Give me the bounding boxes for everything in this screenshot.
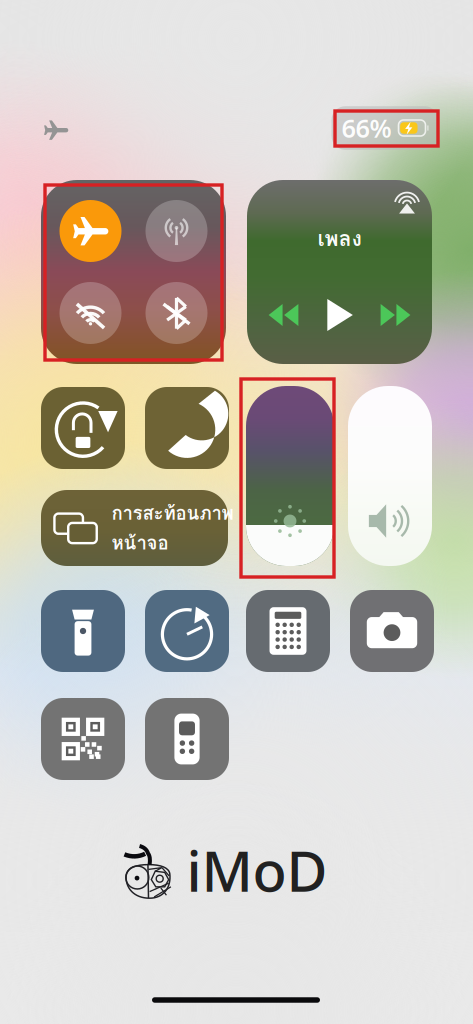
button[interactable]: Previous (268, 304, 299, 326)
button[interactable]: Wi-Fi (59, 282, 121, 344)
button[interactable]: Calculator (246, 590, 330, 672)
staticText: เพลง (317, 222, 361, 255)
button[interactable]: Cellular Data (145, 200, 207, 262)
staticText: 66% (341, 111, 391, 145)
button[interactable]: Screen Mirroring (41, 490, 228, 566)
button[interactable]: AirPlay (396, 190, 418, 214)
staticText: iMoD (186, 833, 327, 907)
button[interactable]: Airplane Mode (59, 200, 121, 262)
staticText: การสะท้อนภาพ (111, 499, 233, 527)
button[interactable]: Do Not Disturb (145, 387, 229, 469)
button[interactable]: Volume (348, 386, 432, 566)
button[interactable]: Flashlight (41, 590, 125, 672)
button[interactable]: Timer (145, 590, 229, 672)
staticText: หน้าจอ (111, 528, 168, 557)
button[interactable]: Apple TV Remote (145, 698, 229, 780)
button[interactable]: Code Scanner (41, 698, 125, 780)
button[interactable]: Next (380, 304, 411, 326)
button[interactable]: Bluetooth (145, 282, 207, 344)
button[interactable]: Camera (350, 590, 434, 672)
button[interactable]: Rotation Lock (41, 387, 125, 469)
button[interactable]: Play (325, 299, 354, 331)
button[interactable]: Brightness (246, 386, 334, 566)
